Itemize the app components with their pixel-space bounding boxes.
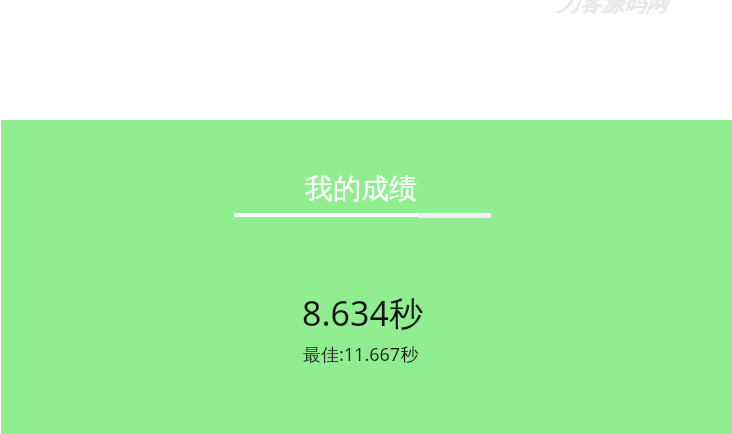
staticText: 最佳:11.667秒 bbox=[303, 342, 419, 367]
button[interactable] bbox=[1, 120, 732, 434]
staticText: 刀客源码网 bbox=[557, 0, 667, 18]
staticText: 我的成绩 bbox=[305, 171, 417, 206]
staticText: 8.634秒 bbox=[302, 290, 423, 336]
